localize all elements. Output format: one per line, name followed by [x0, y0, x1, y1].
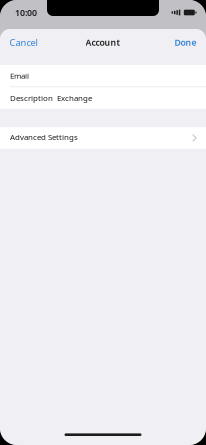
staticText: Advanced Settings — [10, 132, 78, 142]
staticText: Cancel — [9, 36, 37, 49]
button[interactable]: Advanced Settings — [0, 127, 206, 149]
staticText: Account — [85, 37, 120, 48]
button[interactable]: Cancel — [0, 31, 47, 54]
staticText: Done — [174, 37, 196, 48]
staticText: Email — [10, 70, 29, 81]
staticText: Exchange — [57, 93, 92, 103]
staticText: 10:00 — [15, 6, 37, 18]
button[interactable]: Description — [0, 87, 206, 109]
button[interactable]: Email — [0, 65, 206, 86]
button[interactable]: Done — [165, 32, 206, 53]
staticText: Description — [10, 93, 53, 103]
